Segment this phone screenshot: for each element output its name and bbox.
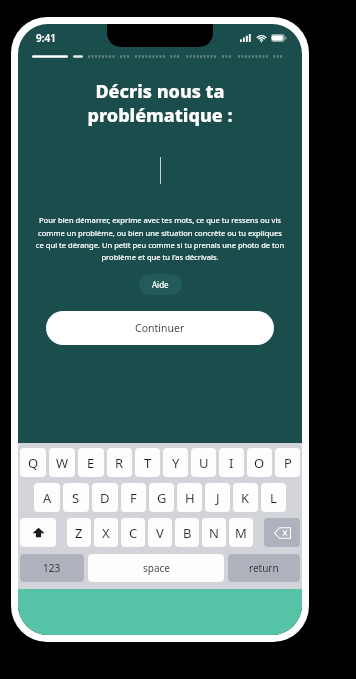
staticText: B — [183, 524, 192, 542]
staticText: G — [157, 489, 167, 507]
button[interactable]: E — [78, 448, 104, 477]
button[interactable]: return — [228, 554, 300, 582]
button[interactable]: H — [177, 483, 202, 512]
staticText: E — [87, 454, 95, 472]
staticText: K — [241, 489, 250, 507]
staticText: C — [129, 524, 138, 542]
button[interactable]: space — [88, 554, 224, 582]
button[interactable]: Backspace — [264, 518, 300, 547]
staticText: T — [144, 454, 152, 472]
button[interactable]: Q — [20, 448, 46, 477]
button[interactable]: 123 — [20, 554, 84, 582]
button[interactable]: Aide — [139, 274, 182, 295]
staticText: J — [216, 489, 220, 507]
staticText: Q — [28, 454, 39, 472]
button[interactable]: F — [121, 483, 146, 512]
button[interactable]: B — [175, 518, 199, 547]
staticText: Z — [75, 524, 83, 542]
button[interactable]: M — [229, 518, 253, 547]
button[interactable]: P — [275, 448, 300, 477]
staticText: O — [254, 454, 265, 472]
staticText: Aide — [152, 279, 169, 290]
button[interactable]: J — [205, 483, 230, 512]
button[interactable]: W — [49, 448, 75, 477]
button[interactable]: K — [233, 483, 258, 512]
button[interactable]: G — [149, 483, 174, 512]
staticText: X — [102, 524, 110, 542]
staticText: 9:41 — [36, 31, 56, 45]
button[interactable]: Z — [67, 518, 91, 547]
staticText: S — [72, 489, 80, 507]
button[interactable]: Continuer — [46, 311, 274, 345]
staticText: space — [143, 561, 170, 575]
staticText: I — [229, 454, 234, 472]
button[interactable]: L — [261, 483, 286, 512]
button[interactable]: C — [121, 518, 145, 547]
staticText: U — [199, 454, 209, 472]
staticText: A — [43, 489, 52, 507]
staticText: Pour bien démarrer, exprime avec tes mot… — [35, 215, 285, 262]
staticText: 123 — [43, 561, 61, 575]
staticText: Y — [172, 454, 180, 472]
staticText: Décris nous ta problématique : — [38, 79, 282, 127]
button[interactable]: S — [63, 483, 89, 512]
button[interactable]: X — [94, 518, 118, 547]
staticText: return — [249, 561, 279, 575]
button[interactable] — [18, 153, 302, 187]
staticText: V — [156, 524, 164, 542]
staticText: R — [115, 454, 124, 472]
button[interactable]: I — [219, 448, 244, 477]
button[interactable]: Shift — [20, 518, 56, 547]
button[interactable]: Y — [163, 448, 188, 477]
button[interactable]: U — [191, 448, 216, 477]
button[interactable]: N — [202, 518, 226, 547]
button[interactable]: R — [107, 448, 132, 477]
staticText: N — [209, 524, 219, 542]
button[interactable]: O — [247, 448, 272, 477]
staticText: W — [56, 454, 69, 472]
staticText: F — [130, 489, 137, 507]
button[interactable]: A — [34, 483, 60, 512]
button[interactable]: T — [135, 448, 160, 477]
staticText: H — [185, 489, 195, 507]
staticText: Continuer — [135, 321, 185, 335]
staticText: P — [284, 454, 292, 472]
staticText: L — [270, 489, 277, 507]
staticText: M — [235, 524, 247, 542]
button[interactable]: V — [148, 518, 172, 547]
staticText: D — [100, 489, 110, 507]
button[interactable]: D — [92, 483, 118, 512]
